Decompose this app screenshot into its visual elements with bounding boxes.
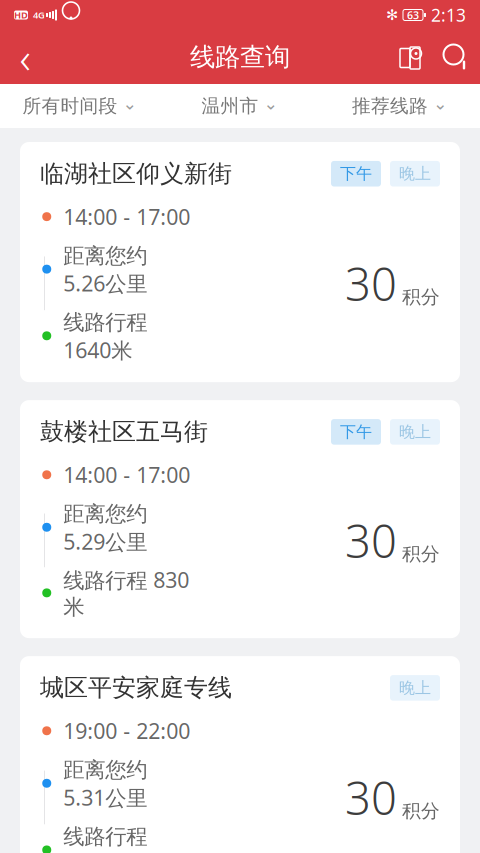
button[interactable]: 临湖社区仰义新街 <box>20 142 460 382</box>
staticText: 临湖社区仰义新街 <box>40 159 232 188</box>
staticText: 温州市 <box>201 94 258 117</box>
staticText: 14:00 - 17:00 <box>63 461 190 489</box>
staticText: ‹ <box>19 29 30 85</box>
staticText: 下午 <box>340 164 372 184</box>
staticText: 14:00 - 17:00 <box>63 202 190 231</box>
staticText: 线路行程 830米 <box>63 566 189 620</box>
button[interactable]: 城区平安家庭专线 <box>20 656 460 853</box>
staticText: 下午 <box>340 422 372 442</box>
button[interactable]: 所有时间段 <box>0 84 160 128</box>
staticText: ⌄ <box>122 94 137 113</box>
staticText: 积分 <box>402 542 440 565</box>
staticText: 所有时间段 <box>22 94 117 117</box>
button[interactable]: 地图 <box>388 30 432 84</box>
staticText: 19:00 - 22:00 <box>63 717 190 745</box>
staticText: ⌄ <box>263 94 278 113</box>
staticText: 晚上 <box>399 422 431 442</box>
staticText: 鼓楼社区五马街 <box>40 417 208 447</box>
button[interactable]: 搜索 <box>432 30 480 84</box>
staticText: 2:13 <box>431 3 466 26</box>
staticText: 线路行程 1640米 <box>63 307 147 364</box>
button[interactable]: 推荐线路 <box>320 84 480 128</box>
staticText: 30 <box>345 510 397 570</box>
staticText: ✻ <box>386 7 398 23</box>
staticText: 距离您约 5.26公里 <box>63 241 147 297</box>
staticText: 63 <box>407 8 419 22</box>
staticText: 30 <box>345 767 397 827</box>
button[interactable]: 返回 <box>0 30 50 84</box>
staticText: 线路行程 1080米 <box>63 822 147 853</box>
staticText: 晚上 <box>399 678 431 698</box>
staticText: 推荐线路 <box>352 94 428 117</box>
staticText: ⌄ <box>433 94 448 113</box>
staticText: 积分 <box>402 800 440 822</box>
staticText: 距离您约 5.29公里 <box>63 499 147 556</box>
staticText: 距离您约 5.31公里 <box>63 755 147 812</box>
staticText: 积分 <box>402 285 440 308</box>
staticText: HD <box>14 9 28 21</box>
staticText: 30 <box>345 253 397 313</box>
button[interactable]: 温州市 <box>160 84 320 128</box>
staticText: 晚上 <box>399 164 431 184</box>
button[interactable]: 鼓楼社区五马街 <box>20 400 460 638</box>
staticText: 4G <box>33 9 45 21</box>
staticText: 线路查询 <box>190 41 290 72</box>
staticText: 城区平安家庭专线 <box>40 673 232 703</box>
